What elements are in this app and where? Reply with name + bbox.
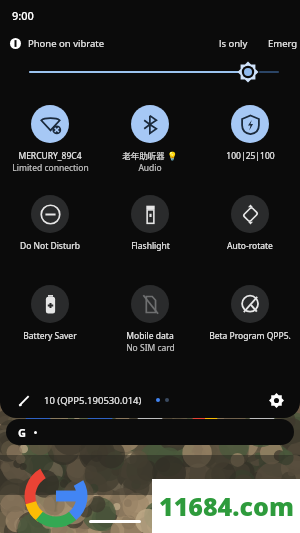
button[interactable]: Emerg: [268, 37, 298, 50]
button[interactable]: Edit tiles: [14, 390, 34, 410]
button[interactable]: Mobile data: [100, 276, 200, 366]
staticText: Auto-rotate: [227, 240, 273, 252]
staticText: Emerg: [268, 37, 298, 50]
button[interactable]: 100|25|100: [200, 96, 300, 186]
staticText: Battery Saver: [23, 330, 77, 342]
staticText: Beta Program QPP5.: [209, 330, 291, 342]
button[interactable]: Auto-rotate: [200, 186, 300, 276]
button[interactable]: ls only: [215, 37, 252, 50]
staticText: Phone on vibrate: [28, 37, 105, 50]
staticText: Mobile data: [126, 330, 174, 342]
staticText: 100|25|100: [226, 150, 275, 162]
button[interactable]: Google search: [6, 419, 294, 445]
staticText: MERCURY_89C4: [18, 150, 82, 162]
staticText: 老年助听器 💡: [122, 150, 178, 162]
staticText: 11684.com: [159, 489, 294, 523]
staticText: Limited connection: [12, 162, 89, 174]
button[interactable]: Battery Saver: [0, 276, 100, 366]
button[interactable]: Beta Program QPP5.: [200, 276, 300, 366]
button[interactable]: MERCURY_89C4: [0, 96, 100, 186]
staticText: Audio: [138, 162, 162, 174]
staticText: ls only: [219, 37, 248, 50]
button[interactable]: Flashlight: [100, 186, 200, 276]
staticText: Flashlight: [131, 240, 170, 252]
button[interactable]: 老年助听器 💡: [100, 96, 200, 186]
staticText: Do Not Disturb: [20, 240, 80, 252]
staticText: No SIM card: [126, 342, 175, 354]
button[interactable]: Brightness: [0, 56, 300, 88]
staticText: G: [18, 425, 26, 440]
button[interactable]: Do Not Disturb: [0, 186, 100, 276]
staticText: 9:00: [12, 8, 34, 23]
staticText: 10 (QPP5.190530.014): [44, 394, 142, 407]
button[interactable]: Settings: [264, 388, 288, 412]
